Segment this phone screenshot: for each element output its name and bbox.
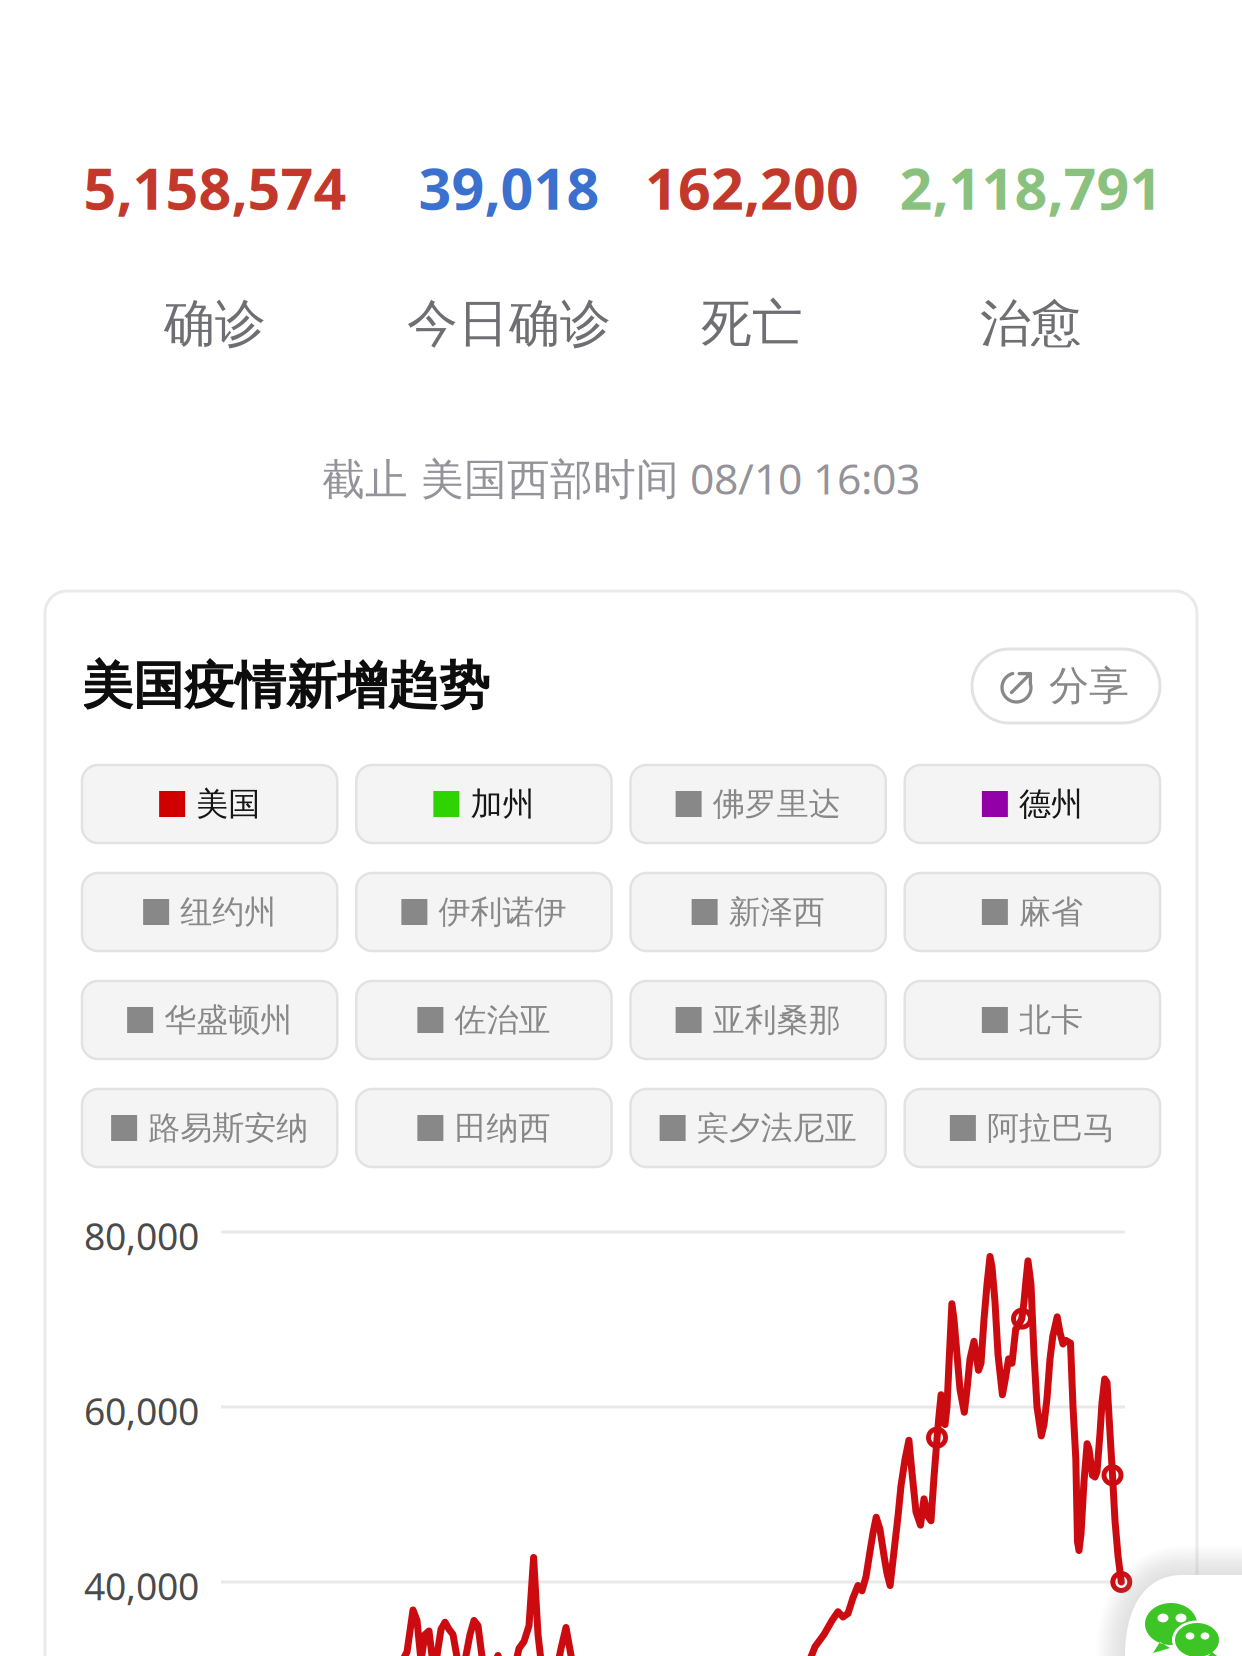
staticText: 田纳西 [454, 1108, 550, 1148]
staticText: 确诊 [164, 292, 266, 355]
button[interactable]: 田纳西 [356, 1089, 611, 1167]
staticText: 治愈 [980, 292, 1082, 355]
button[interactable]: 路易斯安纳 [82, 1089, 337, 1167]
staticText: 162,200 [645, 149, 859, 225]
staticText: 佐治亚 [454, 1000, 550, 1040]
staticText: 40,000 [84, 1561, 199, 1611]
staticText: 德州 [1019, 784, 1083, 824]
button[interactable]: 北卡 [905, 981, 1160, 1059]
staticText: 截止 美国西部时间 08/10 16:03 [322, 450, 920, 506]
staticText: 今日确诊 [407, 292, 611, 355]
staticText: 80,000 [84, 1211, 199, 1261]
button[interactable]: 阿拉巴马 [905, 1089, 1160, 1167]
button[interactable]: 伊利诺伊 [356, 873, 611, 951]
staticText: 路易斯安纳 [148, 1108, 308, 1148]
staticText: 亚利桑那 [713, 1000, 841, 1040]
button[interactable]: 佛罗里达 [630, 765, 886, 843]
staticText: 新泽西 [729, 892, 825, 932]
button[interactable]: 麻省 [905, 873, 1160, 951]
staticText: 伊利诺伊 [438, 892, 566, 932]
staticText: 麻省 [1019, 892, 1083, 932]
button[interactable]: 美国 [82, 765, 337, 843]
button[interactable]: 宾夕法尼亚 [630, 1089, 886, 1167]
staticText: 美国 [196, 784, 260, 824]
button[interactable]: 加州 [356, 765, 611, 843]
staticText: 美国疫情新增趋势 [82, 655, 490, 717]
button[interactable]: 新泽西 [630, 873, 886, 951]
button[interactable]: 华盛顿州 [82, 981, 337, 1059]
staticText: 加州 [470, 784, 534, 824]
staticText: 39,018 [418, 149, 599, 225]
button[interactable]: 佐治亚 [356, 981, 611, 1059]
button[interactable]: Share to WeChat [0, 0, 1242, 1656]
staticText: 死亡 [701, 292, 803, 355]
staticText: 纽约州 [180, 892, 276, 932]
button[interactable]: 分享 [972, 649, 1160, 723]
staticText: 阿拉巴马 [987, 1108, 1115, 1148]
button[interactable]: 亚利桑那 [630, 981, 886, 1059]
staticText: 5,158,574 [83, 149, 346, 225]
staticText: 华盛顿州 [164, 1000, 292, 1040]
button[interactable]: 德州 [905, 765, 1160, 843]
staticText: 北卡 [1019, 1000, 1083, 1040]
staticText: 分享 [1049, 661, 1129, 710]
staticText: 佛罗里达 [713, 784, 841, 824]
staticText: 60,000 [84, 1386, 199, 1436]
staticText: 宾夕法尼亚 [697, 1108, 857, 1148]
button[interactable]: 纽约州 [82, 873, 337, 951]
staticText: 2,118,791 [899, 149, 1162, 225]
